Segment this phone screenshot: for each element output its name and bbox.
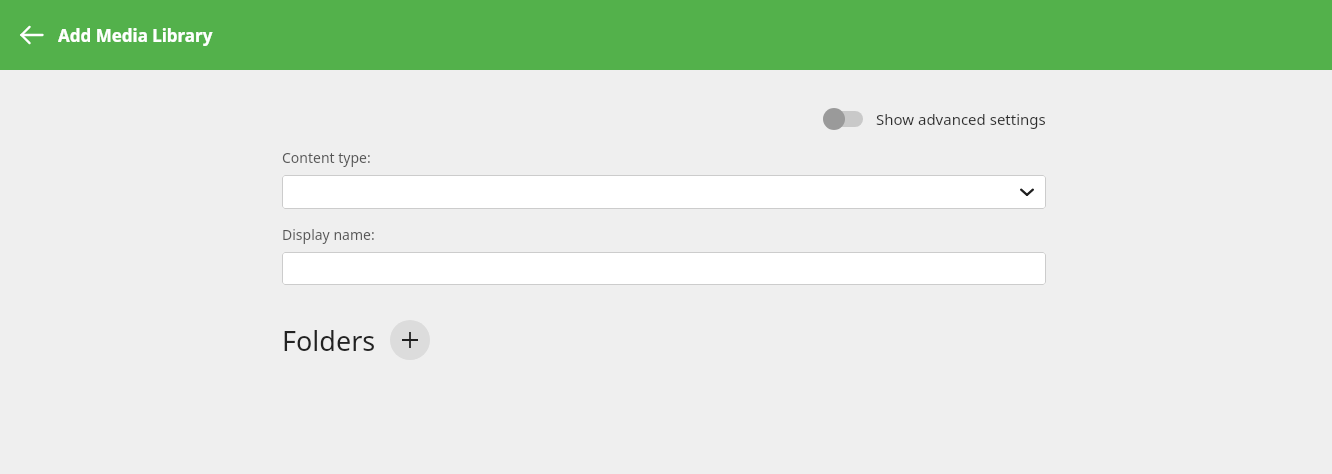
staticText: Show advanced settings [876,109,1046,129]
staticText: Folders [282,322,376,359]
button[interactable]: Back [10,13,54,57]
button[interactable]: Display name field [282,252,1046,285]
button[interactable]: Content type dropdown [282,175,1046,209]
button[interactable]: Show advanced settings [823,103,1046,135]
staticText: Add Media Library [58,24,213,47]
button[interactable]: Add folder [390,320,430,360]
staticText: Content type: [282,148,371,167]
staticText: Display name: [282,225,375,244]
